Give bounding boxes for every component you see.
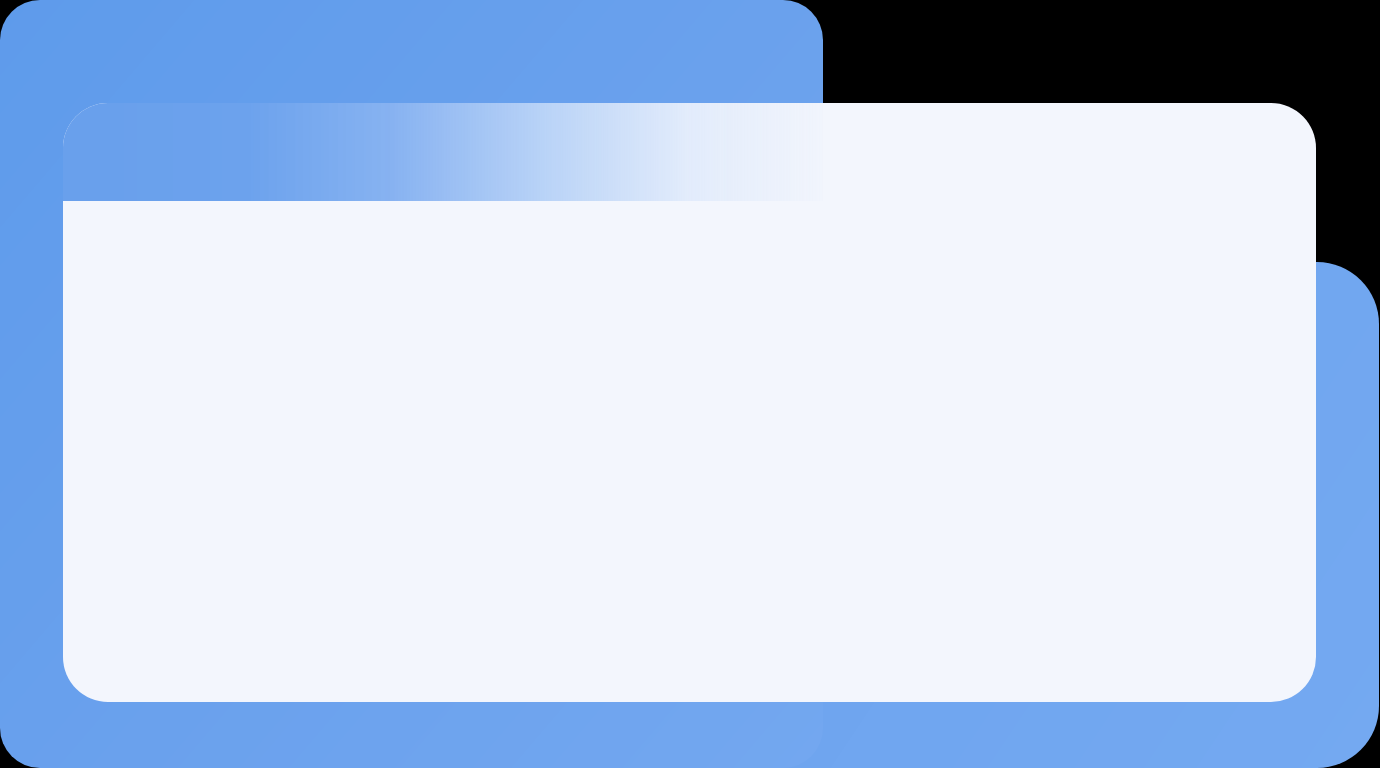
button[interactable]: Stacked sheets illustration [0, 0, 1380, 768]
